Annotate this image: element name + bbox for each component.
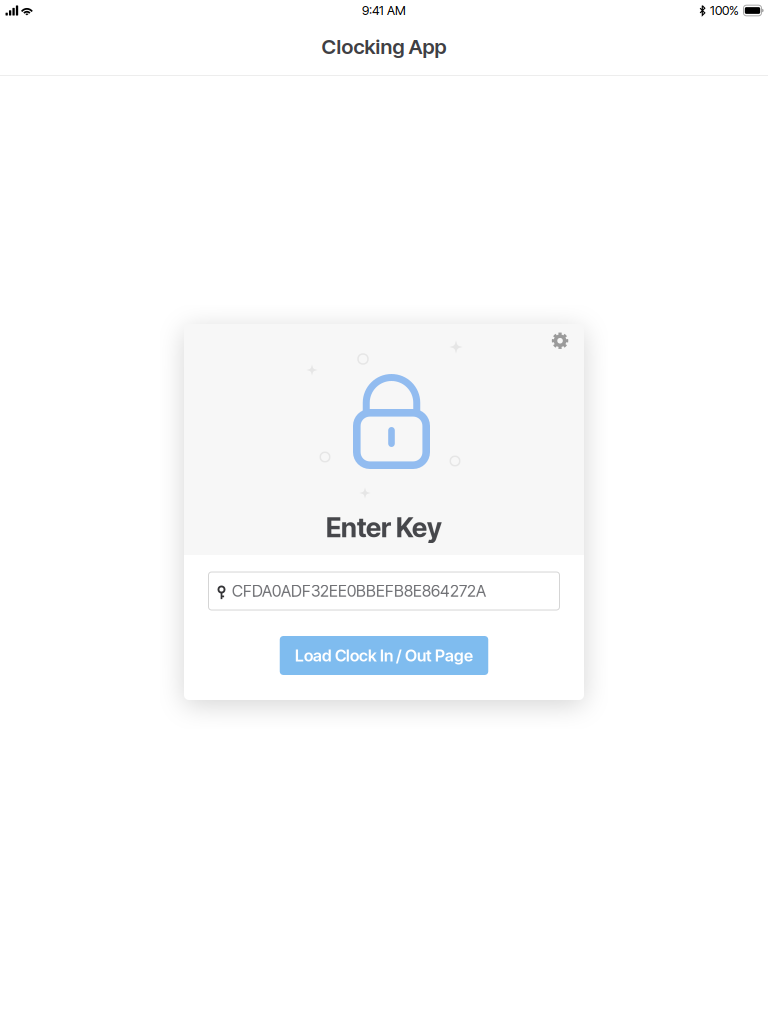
staticText: CFDA0ADF32EE0BBEFB8E864272A bbox=[232, 581, 486, 601]
staticText: Enter Key bbox=[326, 511, 442, 544]
button[interactable]: Load Clock In / Out Page bbox=[280, 636, 488, 675]
staticText: Clocking App bbox=[321, 34, 446, 59]
staticText: 100% bbox=[710, 3, 739, 18]
staticText: 9:41 AM bbox=[362, 3, 406, 18]
button[interactable]: Settings bbox=[538, 324, 584, 363]
button[interactable]: CFDA0ADF32EE0BBEFB8E864272A bbox=[208, 572, 559, 610]
staticText: Load Clock In / Out Page bbox=[295, 646, 473, 665]
